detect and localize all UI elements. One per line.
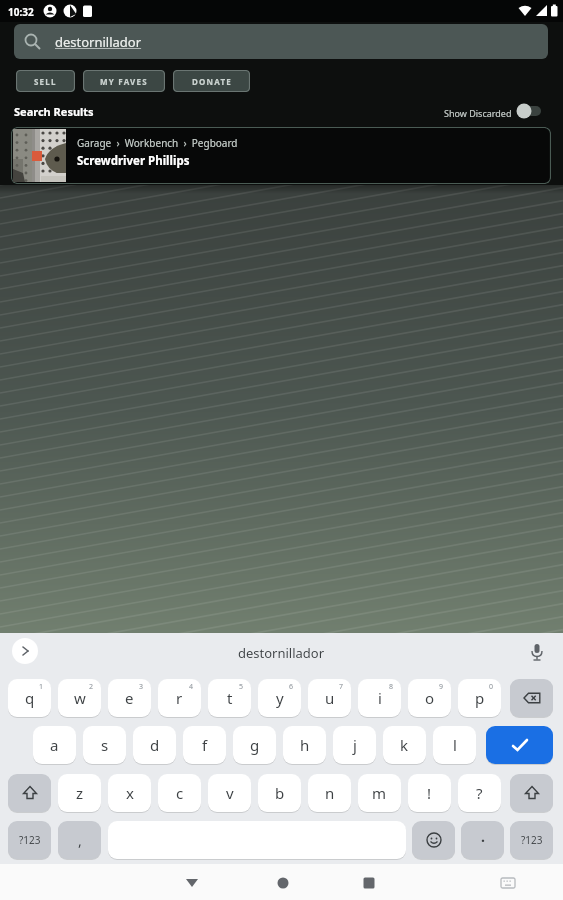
button[interactable]: ?123 xyxy=(510,821,553,859)
button[interactable]: w xyxy=(58,679,101,717)
staticText: z xyxy=(76,783,84,803)
staticText: c xyxy=(176,783,184,803)
staticText: j xyxy=(353,735,357,755)
staticText: s xyxy=(101,735,109,755)
button[interactable]: SELL xyxy=(16,70,75,92)
staticText: Garage › Workbench › Pegboard xyxy=(77,136,238,150)
button[interactable]: ? xyxy=(458,774,501,812)
staticText: ?123 xyxy=(19,833,41,847)
staticText: 3 xyxy=(139,682,144,692)
button[interactable] xyxy=(12,638,38,664)
button[interactable] xyxy=(496,870,520,894)
button[interactable]: q xyxy=(8,679,51,717)
button[interactable] xyxy=(180,870,204,894)
button[interactable]: , xyxy=(58,821,101,859)
staticText: e xyxy=(125,688,134,708)
button[interactable]: DONATE xyxy=(173,70,250,92)
button[interactable]: d xyxy=(133,726,176,764)
staticText: t xyxy=(227,688,233,708)
button[interactable]: b xyxy=(258,774,301,812)
button[interactable] xyxy=(271,870,295,894)
staticText: MY FAVES xyxy=(100,76,148,87)
button[interactable]: ?123 xyxy=(8,821,51,859)
button[interactable]: o xyxy=(408,679,451,717)
button[interactable]: i xyxy=(358,679,401,717)
staticText: Screwdriver Phillips xyxy=(77,153,190,169)
button[interactable]: Garage › Workbench › Pegboard xyxy=(11,127,551,184)
button[interactable]: m xyxy=(358,774,401,812)
button[interactable] xyxy=(528,643,546,663)
staticText: n xyxy=(325,783,335,803)
staticText: f xyxy=(202,735,208,755)
button[interactable]: l xyxy=(433,726,476,764)
staticText: 8 xyxy=(389,682,394,692)
staticText: 1 xyxy=(39,682,44,692)
button[interactable]: x xyxy=(108,774,151,812)
button[interactable] xyxy=(412,821,455,859)
button[interactable]: e xyxy=(108,679,151,717)
staticText: i xyxy=(378,688,382,708)
staticText: 0 xyxy=(489,682,494,692)
button[interactable]: g xyxy=(233,726,276,764)
button[interactable]: v xyxy=(208,774,251,812)
staticText: ! xyxy=(427,783,432,803)
button[interactable]: n xyxy=(308,774,351,812)
staticText: r xyxy=(176,688,183,708)
button[interactable]: t xyxy=(208,679,251,717)
staticText: · xyxy=(481,831,485,850)
staticText: Show Discarded xyxy=(444,107,512,119)
staticText: d xyxy=(150,735,160,755)
staticText: b xyxy=(275,783,285,803)
staticText: destornillador xyxy=(55,33,142,51)
staticText: u xyxy=(325,688,335,708)
button[interactable]: MY FAVES xyxy=(83,70,165,92)
button[interactable] xyxy=(8,774,51,812)
staticText: 7 xyxy=(339,682,344,692)
staticText: q xyxy=(25,688,35,708)
staticText: 2 xyxy=(89,682,94,692)
button[interactable]: c xyxy=(158,774,201,812)
staticText: 6 xyxy=(289,682,294,692)
button[interactable]: a xyxy=(33,726,76,764)
button[interactable]: k xyxy=(383,726,426,764)
button[interactable]: z xyxy=(58,774,101,812)
button[interactable]: ! xyxy=(408,774,451,812)
staticText: ? xyxy=(476,783,483,803)
staticText: k xyxy=(400,735,409,755)
staticText: 5 xyxy=(239,682,244,692)
button[interactable] xyxy=(510,679,553,717)
button[interactable] xyxy=(486,726,553,764)
staticText: 9 xyxy=(439,682,444,692)
button[interactable]: r xyxy=(158,679,201,717)
staticText: , xyxy=(78,831,82,850)
staticText: l xyxy=(453,735,457,755)
button[interactable] xyxy=(510,774,553,812)
button[interactable]: j xyxy=(333,726,376,764)
staticText: 4 xyxy=(189,682,194,692)
button[interactable]: destornillador xyxy=(14,24,548,59)
button[interactable] xyxy=(357,870,381,894)
button[interactable]: f xyxy=(183,726,226,764)
staticText: Search Results xyxy=(14,104,94,119)
staticText: m xyxy=(372,783,387,803)
button[interactable]: y xyxy=(258,679,301,717)
button[interactable]: · xyxy=(461,821,504,859)
button[interactable]: u xyxy=(308,679,351,717)
staticText: h xyxy=(300,735,310,755)
button[interactable] xyxy=(516,103,544,119)
staticText: w xyxy=(74,688,86,708)
staticText: v xyxy=(226,783,234,803)
button[interactable]: s xyxy=(83,726,126,764)
staticText: 10:32 xyxy=(8,5,34,19)
staticText: g xyxy=(250,735,260,755)
staticText: x xyxy=(126,783,134,803)
staticText: a xyxy=(50,735,59,755)
button[interactable]: p xyxy=(458,679,501,717)
button[interactable]: h xyxy=(283,726,326,764)
staticText: y xyxy=(276,688,284,708)
staticText: ?123 xyxy=(521,833,543,847)
staticText: SELL xyxy=(34,76,57,87)
staticText: p xyxy=(475,688,485,708)
staticText: o xyxy=(425,688,435,708)
